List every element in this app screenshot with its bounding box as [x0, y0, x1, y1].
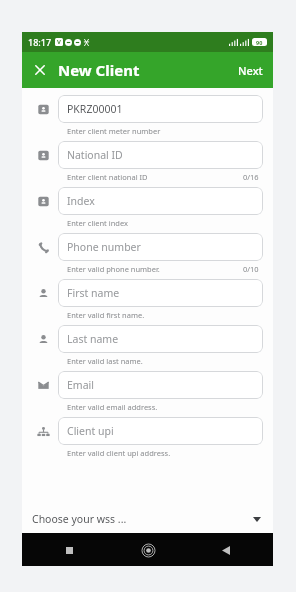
staticText: Enter client meter number [67, 126, 161, 136]
button[interactable]: Home [135, 537, 161, 563]
staticText: First name [67, 286, 120, 300]
staticText: Enter client national ID [67, 172, 148, 182]
button[interactable]: National ID [58, 141, 263, 169]
button[interactable]: Next [228, 52, 273, 88]
button[interactable]: Close [22, 52, 58, 88]
button[interactable]: First name [58, 279, 263, 307]
staticText: Last name [67, 332, 119, 346]
button[interactable]: Client upi [58, 417, 263, 445]
staticText: Client upi [67, 424, 114, 438]
button[interactable]: Phone number [58, 233, 263, 261]
staticText: Enter valid client upi address. [67, 448, 171, 458]
button[interactable]: Choose your wss ... [28, 507, 263, 531]
staticText: Enter valid phone number. [67, 264, 160, 274]
staticText: Next [238, 63, 263, 78]
button[interactable]: PKRZ00001 [58, 95, 263, 123]
staticText: Choose your wss ... [32, 512, 127, 526]
button[interactable]: Last name [58, 325, 263, 353]
staticText: Email [67, 378, 94, 392]
staticText: PKRZ00001 [67, 102, 123, 116]
staticText: Phone number [67, 240, 141, 254]
staticText: 0/16 [243, 172, 259, 182]
staticText: Enter valid first name. [67, 310, 145, 320]
button[interactable]: Email [58, 371, 263, 399]
staticText: New Client [58, 60, 140, 80]
staticText: Enter valid email address. [67, 402, 158, 412]
button[interactable]: Index [58, 187, 263, 215]
staticText: 90 [256, 39, 263, 46]
staticText: National ID [67, 148, 123, 162]
staticText: 18:17 [28, 36, 52, 48]
staticText: Index [67, 194, 95, 208]
staticText: Enter valid last name. [67, 356, 143, 366]
staticText: Enter client index [67, 218, 129, 228]
button[interactable]: Back [213, 537, 239, 563]
staticText: V [57, 38, 61, 46]
staticText: 0/10 [243, 264, 259, 274]
button[interactable]: Recent apps [56, 537, 82, 563]
